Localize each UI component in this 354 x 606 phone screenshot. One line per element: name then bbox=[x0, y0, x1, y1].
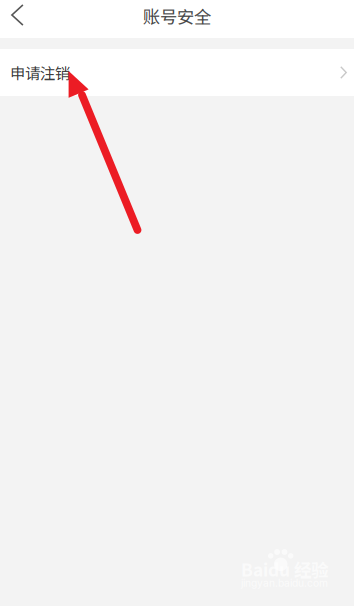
button[interactable]: Back bbox=[0, 0, 44, 34]
button[interactable]: 申请注销 bbox=[0, 49, 354, 96]
staticText: Baidu 经验 bbox=[241, 556, 328, 582]
staticText: 申请注销 bbox=[10, 61, 70, 84]
staticText: 账号安全 bbox=[143, 3, 211, 29]
